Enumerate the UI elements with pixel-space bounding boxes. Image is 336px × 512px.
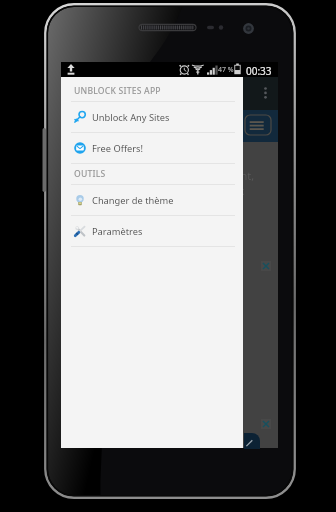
button[interactable]: More options <box>257 83 274 105</box>
staticText: OUTILS <box>74 168 106 180</box>
staticText: Paramètres <box>92 225 143 238</box>
staticText: UNBLOCK SITES APP <box>74 85 161 97</box>
staticText: 00:33 <box>246 64 272 78</box>
staticText: Unblock Any Sites <box>92 111 170 124</box>
button[interactable]: Paramètres <box>61 216 243 247</box>
staticText: Free Offers! <box>92 142 144 155</box>
button[interactable]: Unblock Any Sites <box>61 102 243 133</box>
staticText: k <box>239 184 245 198</box>
button[interactable]: Free Offers! <box>61 133 243 164</box>
button[interactable]: Changer de thème <box>61 185 243 216</box>
staticText: sant, <box>229 168 255 183</box>
staticText: Changer de thème <box>92 194 174 207</box>
staticText: 47 % <box>218 65 234 75</box>
